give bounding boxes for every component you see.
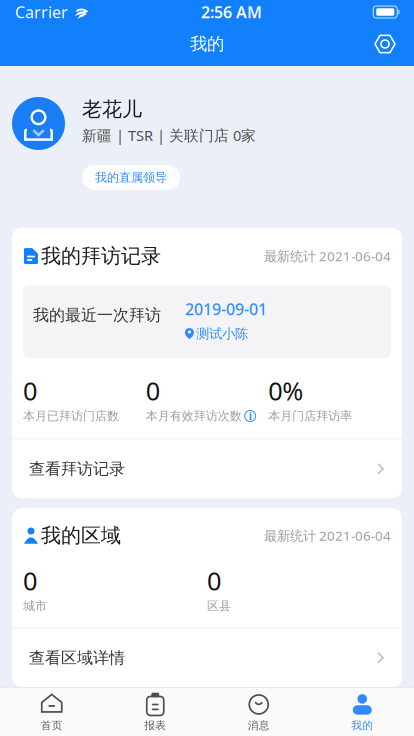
staticText: 测试小陈 bbox=[196, 326, 248, 342]
button[interactable]: 查看拜访记录 bbox=[12, 439, 402, 498]
staticText: i bbox=[249, 409, 252, 423]
staticText: 0% bbox=[268, 374, 303, 408]
staticText: 我的拜访记录 bbox=[41, 244, 161, 268]
button[interactable]: 报表 bbox=[103, 688, 207, 736]
staticText: 我的 bbox=[190, 33, 224, 55]
staticText: 0 bbox=[207, 564, 221, 597]
staticText: 我的直属领导 bbox=[95, 170, 167, 185]
staticText: 2:56 AM bbox=[201, 1, 262, 23]
staticText: 我的 bbox=[351, 719, 373, 732]
staticText: 本月门店拜访率 bbox=[268, 409, 352, 423]
button[interactable]: 消息 bbox=[207, 688, 310, 736]
staticText: 本月已拜访门店数 bbox=[23, 409, 119, 423]
staticText: 老花儿 bbox=[82, 97, 142, 122]
staticText: 城市 bbox=[23, 599, 47, 613]
staticText: 查看区域详情 bbox=[29, 648, 125, 668]
staticText: 新疆 | TSR | 关联门店 0家 bbox=[82, 126, 256, 145]
staticText: 我的区域 bbox=[41, 523, 121, 548]
staticText: 0 bbox=[146, 374, 160, 408]
staticText: 我的最近一次拜访 bbox=[33, 305, 161, 325]
staticText: 首页 bbox=[41, 719, 63, 732]
button[interactable]: Settings bbox=[368, 27, 402, 61]
button[interactable]: 我的直属领导 bbox=[82, 165, 180, 190]
button[interactable]: 首页 bbox=[0, 688, 103, 736]
staticText: Carrier bbox=[15, 1, 68, 23]
staticText: 报表 bbox=[144, 719, 166, 732]
staticText: 0 bbox=[23, 374, 37, 408]
staticText: 最新统计 2021-06-04 bbox=[264, 247, 391, 265]
staticText: 0 bbox=[23, 564, 37, 597]
button[interactable]: 查看区域详情 bbox=[12, 628, 402, 687]
staticText: 本月有效拜访次数 bbox=[146, 409, 242, 423]
button[interactable]: 我的 bbox=[310, 688, 414, 736]
staticText: 2019-09-01 bbox=[185, 298, 267, 319]
staticText: 最新统计 2021-06-04 bbox=[264, 527, 391, 544]
staticText: 区县 bbox=[207, 599, 231, 613]
staticText: 消息 bbox=[248, 719, 270, 732]
staticText: 查看拜访记录 bbox=[29, 459, 125, 479]
